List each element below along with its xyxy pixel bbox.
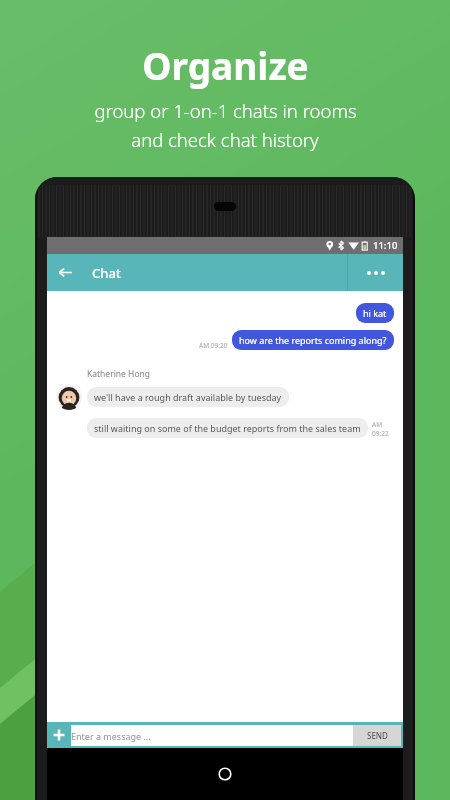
button[interactable]: hi kat (356, 303, 394, 323)
staticText: 11:10 (373, 239, 398, 252)
button[interactable]: Back (47, 254, 84, 291)
staticText: hi kat (363, 307, 387, 319)
button[interactable]: More options (348, 254, 403, 291)
button[interactable]: Enter a message ... (71, 725, 353, 746)
staticText: Katherine Hong (87, 368, 151, 380)
staticText: SEND (367, 730, 388, 741)
staticText: AM 09:20 (199, 341, 228, 350)
button[interactable]: SEND (353, 725, 401, 746)
staticText: we'll have a rough draft available by tu… (94, 391, 282, 403)
staticText: Enter a message ... (71, 730, 151, 742)
staticText: Chat (92, 264, 121, 282)
other: Katherine Hong avatar (56, 384, 82, 410)
button[interactable]: Add attachment (47, 722, 71, 748)
button[interactable]: how are the reports coming along? (232, 330, 394, 350)
staticText: still waiting on some of the budget repo… (94, 422, 361, 434)
staticText: AM 09:22 (372, 420, 394, 438)
staticText: and check chat history (131, 127, 319, 152)
other: Home (218, 767, 232, 781)
staticText: Organize (142, 40, 309, 90)
button[interactable]: we'll have a rough draft available by tu… (87, 387, 289, 407)
button[interactable]: still waiting on some of the budget repo… (87, 418, 368, 438)
staticText: how are the reports coming along? (239, 334, 387, 346)
staticText: group or 1-on-1 chats in rooms (94, 98, 357, 123)
